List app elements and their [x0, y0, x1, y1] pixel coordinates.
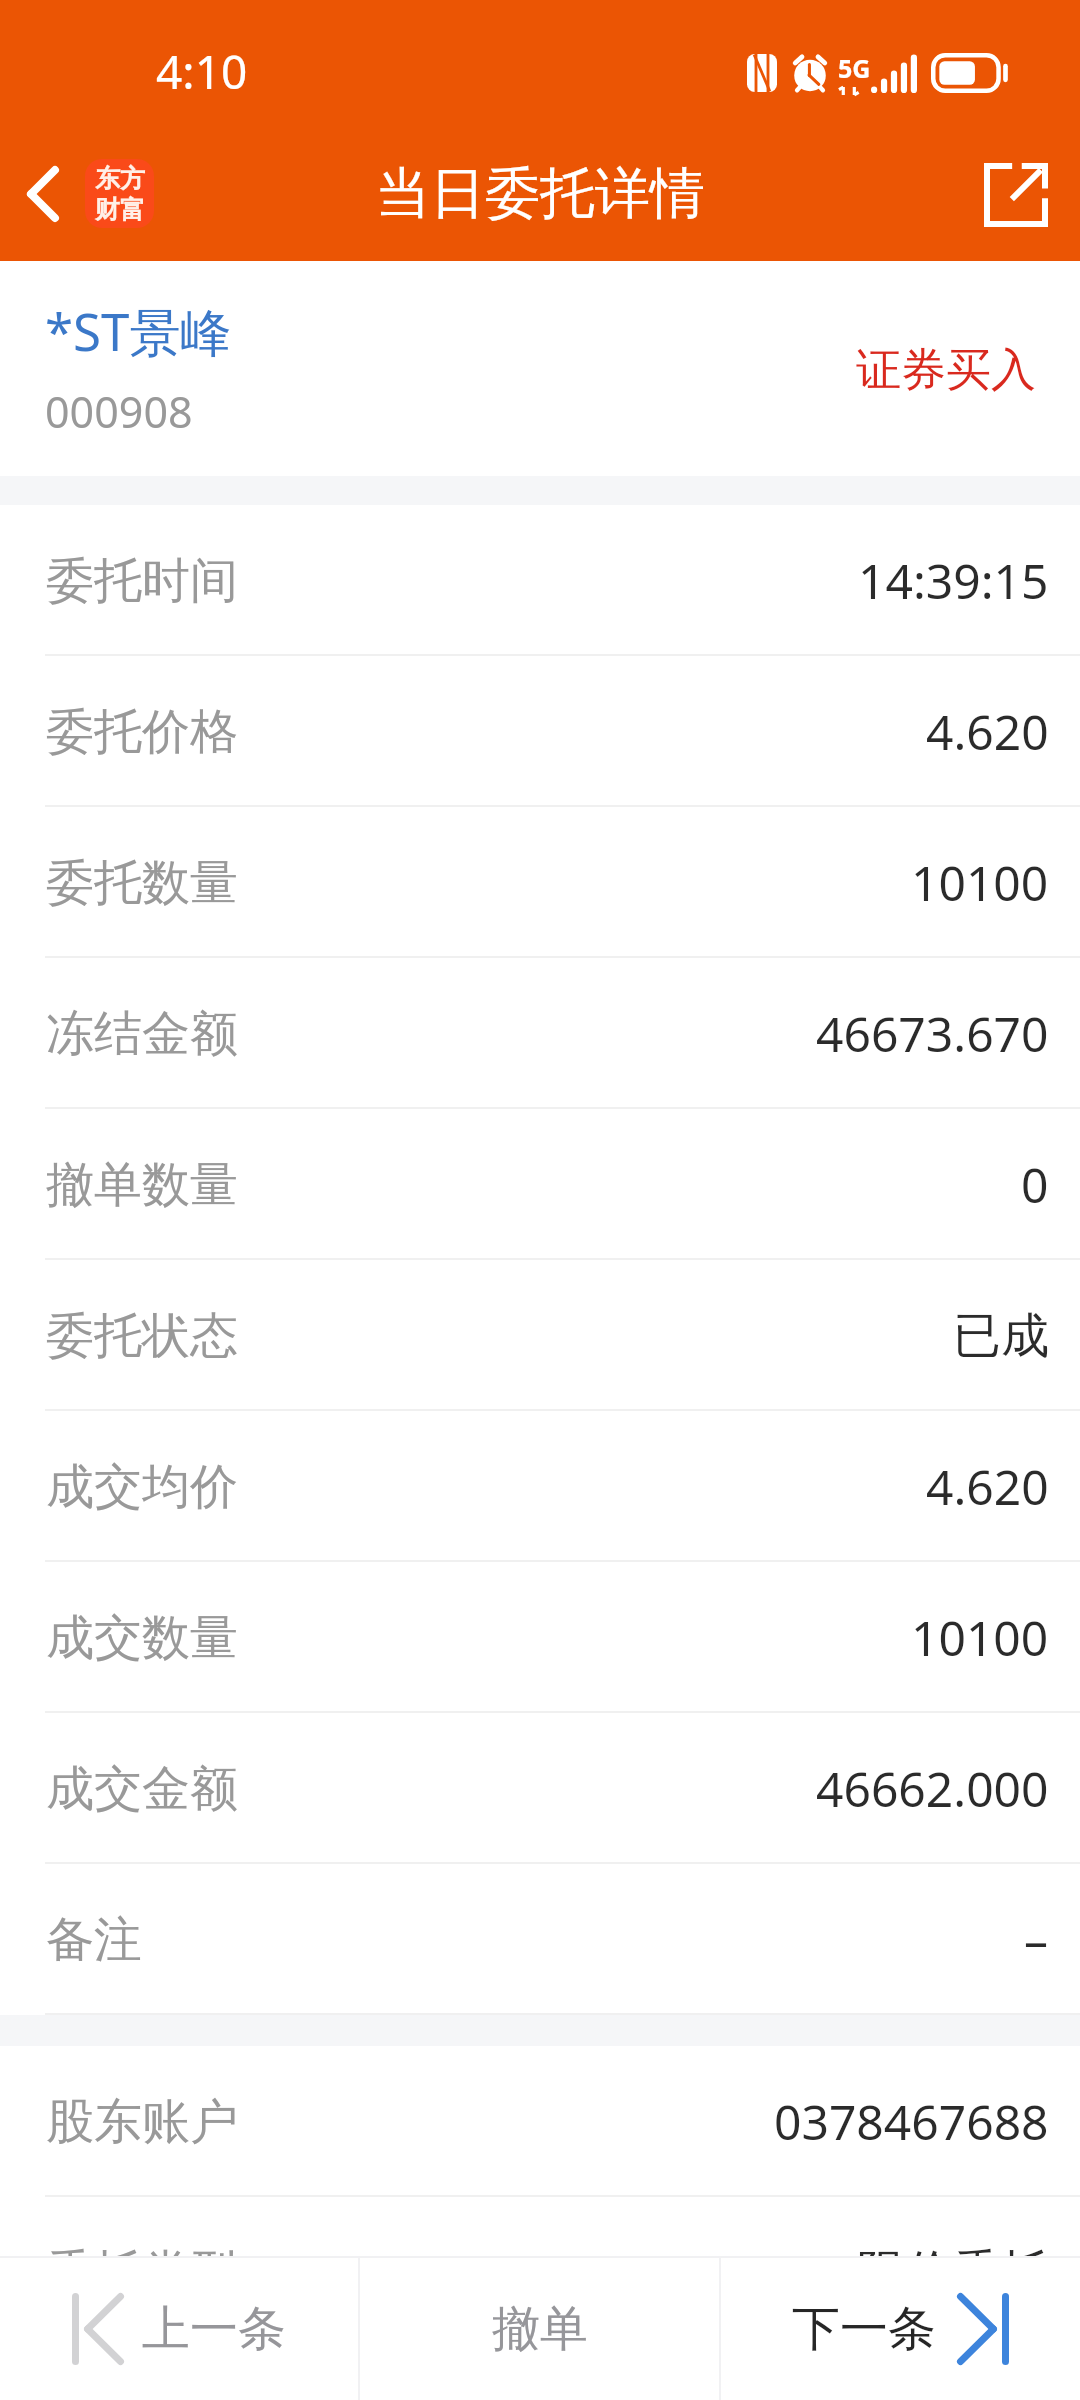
staticText: 4.620 — [926, 1454, 1049, 1519]
staticText: 已成 — [953, 1306, 1049, 1366]
staticText: 委托数量 — [46, 853, 238, 913]
staticText: 备注 — [46, 1910, 142, 1970]
staticText: – — [1024, 1907, 1049, 1972]
button[interactable]: 冻结金额 — [0, 958, 1080, 1109]
button[interactable]: 委托时间 — [0, 505, 1080, 656]
staticText: 4.620 — [926, 699, 1049, 764]
button[interactable]: 股东账户 — [0, 2046, 1080, 2197]
button[interactable]: 成交金额 — [0, 1713, 1080, 1864]
staticText: 财富 — [95, 194, 145, 225]
staticText: 股东账户 — [46, 2092, 238, 2152]
staticText: 成交数量 — [46, 1608, 238, 1668]
staticText: 成交金额 — [46, 1759, 238, 1819]
button[interactable]: 成交数量 — [0, 1562, 1080, 1713]
staticText: 当日委托详情 — [375, 159, 705, 228]
staticText: 委托时间 — [46, 551, 238, 611]
button[interactable]: 委托数量 — [0, 807, 1080, 958]
button[interactable]: *ST景峰 — [0, 261, 1080, 476]
staticText: 000908 — [45, 382, 193, 441]
staticText: 撤单数量 — [46, 1155, 238, 1215]
staticText: 委托状态 — [46, 1306, 238, 1366]
staticText: 0 — [1021, 1152, 1049, 1217]
button[interactable]: 东方财富 — [85, 159, 154, 228]
staticText: 下一条 — [792, 2299, 936, 2359]
staticText: 证券买入 — [856, 342, 1036, 399]
staticText: 46673.670 — [816, 1001, 1049, 1066]
staticText: 委托类型 — [46, 2243, 238, 2303]
staticText: 冻结金额 — [46, 1004, 238, 1064]
button[interactable]: 委托状态 — [0, 1260, 1080, 1411]
staticText: 东方 — [95, 163, 145, 194]
staticText: 4:10 — [156, 40, 248, 103]
button[interactable]: 委托类型 — [0, 2197, 1080, 2348]
button[interactable]: 上一条 — [0, 2258, 358, 2400]
button[interactable]: 成交均价 — [0, 1411, 1080, 1562]
staticText: 成交均价 — [46, 1457, 238, 1517]
staticText: 10100 — [911, 1605, 1049, 1670]
staticText: 0378467688 — [774, 2089, 1049, 2154]
staticText: 14:39:15 — [858, 548, 1049, 613]
staticText: 上一条 — [142, 2299, 286, 2359]
staticText: 5G — [838, 51, 871, 85]
staticText: 46662.000 — [816, 1756, 1049, 1821]
button[interactable]: 撤单 — [360, 2258, 719, 2400]
button[interactable]: 委托价格 — [0, 656, 1080, 807]
button[interactable]: 撤单数量 — [0, 1109, 1080, 1260]
button[interactable]: 备注 — [0, 1864, 1080, 2015]
staticText: *ST景峰 — [45, 296, 232, 366]
button[interactable]: 分享 — [956, 135, 1076, 255]
button[interactable]: 下一条 — [721, 2258, 1080, 2400]
button[interactable]: 返回 — [0, 131, 85, 251]
staticText: 委托价格 — [46, 702, 238, 762]
staticText: 撤单 — [492, 2299, 588, 2359]
staticText: 10100 — [911, 850, 1049, 915]
staticText: 限价委托 — [857, 2243, 1049, 2303]
